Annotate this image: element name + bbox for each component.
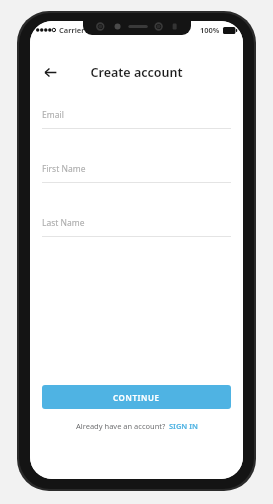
staticText: 100% bbox=[200, 25, 220, 35]
button[interactable]: First Name bbox=[42, 163, 231, 183]
button[interactable]: SIGN IN bbox=[169, 421, 198, 431]
button[interactable]: CONTINUE bbox=[42, 385, 231, 409]
button[interactable]: Email bbox=[42, 109, 231, 129]
staticText: Last Name bbox=[42, 217, 85, 229]
button[interactable]: Back bbox=[37, 59, 63, 85]
staticText: Create account bbox=[90, 64, 183, 81]
staticText: Already have an account? bbox=[76, 421, 166, 431]
staticText: Carrier bbox=[59, 25, 85, 35]
staticText: CONTINUE bbox=[113, 392, 160, 403]
button[interactable]: Last Name bbox=[42, 217, 231, 237]
staticText: First Name bbox=[42, 163, 86, 175]
staticText: Email bbox=[42, 109, 64, 121]
staticText: SIGN IN bbox=[169, 421, 198, 431]
